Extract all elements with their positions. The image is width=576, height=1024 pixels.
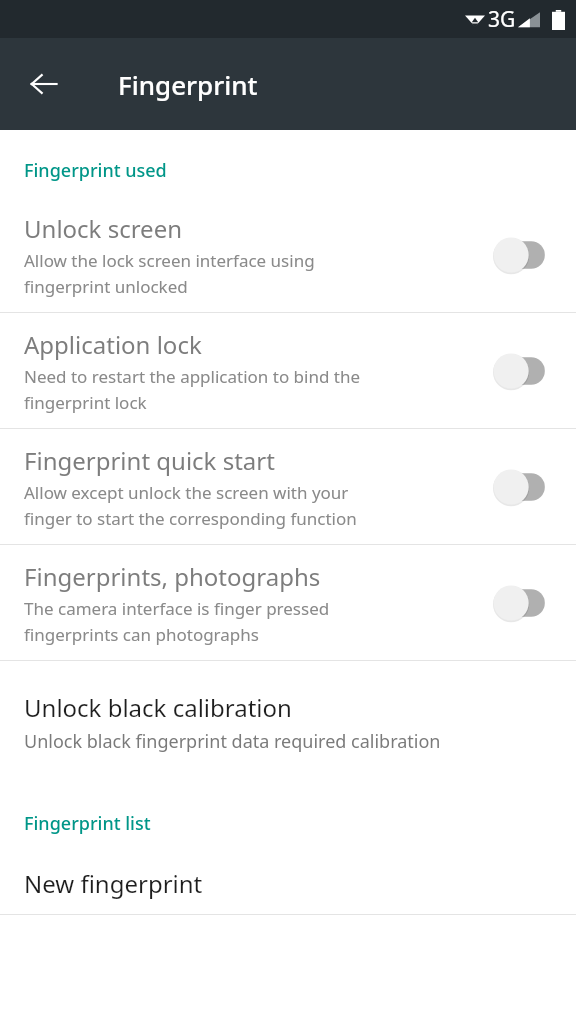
staticText: Fingerprint list bbox=[24, 811, 151, 836]
button[interactable]: Unlock screen bbox=[0, 197, 576, 312]
staticText: Unlock black fingerprint data required c… bbox=[24, 729, 441, 754]
staticText: Unlock black calibration bbox=[24, 691, 292, 724]
staticText: Allow the lock screen interface using fi… bbox=[24, 249, 315, 298]
staticText: Allow except unlock the screen with your… bbox=[24, 481, 357, 530]
staticText: New fingerprint bbox=[24, 867, 203, 900]
button[interactable]: Toggle bbox=[494, 233, 556, 277]
staticText: Fingerprint bbox=[118, 67, 258, 102]
staticText: Need to restart the application to bind … bbox=[24, 365, 361, 414]
button[interactable]: New fingerprint bbox=[0, 852, 576, 914]
button[interactable]: Toggle bbox=[494, 465, 556, 509]
button[interactable]: Fingerprints, photographs bbox=[0, 545, 576, 660]
staticText: Fingerprint quick start bbox=[24, 444, 275, 477]
button[interactable]: Unlock black calibration bbox=[0, 661, 576, 783]
staticText: 3G bbox=[488, 5, 516, 34]
button[interactable]: Application lock bbox=[0, 313, 576, 428]
staticText: Application lock bbox=[24, 328, 202, 361]
button[interactable]: Back bbox=[16, 56, 72, 112]
button[interactable]: Toggle bbox=[494, 349, 556, 393]
staticText: Unlock screen bbox=[24, 212, 183, 245]
staticText: Fingerprint used bbox=[24, 158, 167, 183]
button[interactable]: Fingerprint quick start bbox=[0, 429, 576, 544]
staticText: Fingerprints, photographs bbox=[24, 560, 321, 593]
button[interactable]: Toggle bbox=[494, 581, 556, 625]
staticText: The camera interface is finger pressed f… bbox=[24, 597, 330, 646]
